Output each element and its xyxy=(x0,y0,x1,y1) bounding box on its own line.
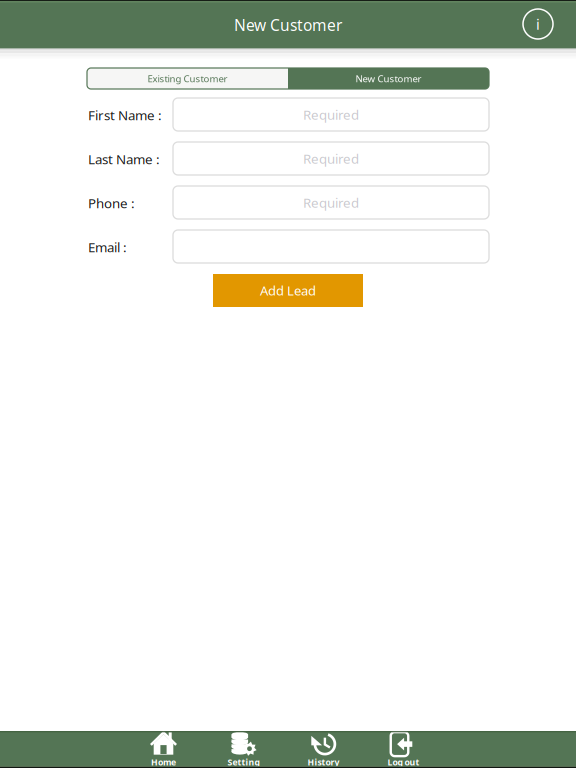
staticText: Required xyxy=(303,193,359,212)
staticText: Setting xyxy=(227,756,259,768)
button[interactable]: Log out xyxy=(363,731,443,766)
staticText: Existing Customer xyxy=(147,72,227,85)
staticText: Required xyxy=(303,149,359,168)
button[interactable]: Add Lead xyxy=(213,274,363,307)
staticText: Required xyxy=(303,105,359,124)
staticText: First Name : xyxy=(88,106,162,124)
button[interactable]: History xyxy=(283,731,363,766)
staticText: Add Lead xyxy=(260,282,316,299)
staticText: Last Name : xyxy=(88,150,160,168)
button[interactable]: Home xyxy=(123,731,203,766)
staticText: Home xyxy=(151,756,176,768)
staticText: Phone : xyxy=(88,194,135,212)
staticText: Email : xyxy=(88,238,127,256)
button[interactable]: Existing Customer xyxy=(87,68,288,89)
staticText: i xyxy=(536,14,540,34)
staticText: New Customer xyxy=(355,72,421,85)
staticText: New Customer xyxy=(234,14,342,36)
button[interactable]: Info xyxy=(523,9,553,39)
staticText: History xyxy=(307,756,339,768)
button[interactable]: Setting xyxy=(203,731,283,766)
button[interactable]: New Customer xyxy=(288,68,489,89)
staticText: Log out xyxy=(387,756,419,768)
